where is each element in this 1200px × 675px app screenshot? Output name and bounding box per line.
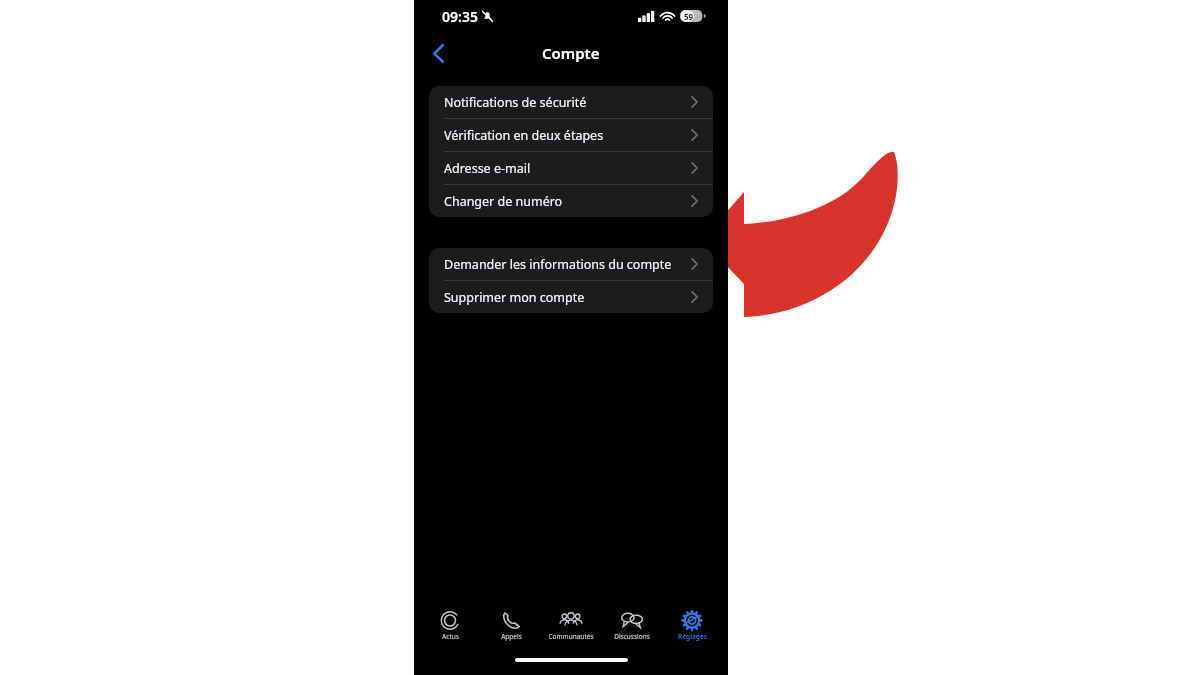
staticText: Adresse e-mail: [444, 160, 691, 177]
staticText: Notifications de sécurité: [444, 94, 691, 111]
button[interactable]: Discussions: [602, 607, 662, 641]
button[interactable]: Adresse e-mail: [429, 152, 713, 184]
staticText: Compte: [542, 43, 600, 63]
staticText: Actus: [442, 632, 459, 641]
button[interactable]: Retour: [420, 35, 456, 71]
staticText: Appels: [501, 632, 522, 641]
button[interactable]: Demander les informations du compte: [429, 248, 713, 280]
button[interactable]: Notifications de sécurité: [429, 86, 713, 118]
button[interactable]: Supprimer mon compte: [429, 281, 713, 313]
button[interactable]: Appels: [481, 607, 541, 641]
button[interactable]: Vérification en deux étapes: [429, 119, 713, 151]
button[interactable]: Changer de numéro: [429, 185, 713, 217]
staticText: Changer de numéro: [444, 193, 691, 210]
button[interactable]: Actus: [420, 607, 480, 641]
button[interactable]: Réglages: [662, 607, 722, 641]
staticText: Discussions: [614, 632, 650, 641]
staticText: Communautés: [548, 632, 594, 641]
staticText: 59: [684, 11, 694, 22]
staticText: Vérification en deux étapes: [444, 127, 691, 144]
staticText: Supprimer mon compte: [444, 289, 691, 306]
staticText: Demander les informations du compte: [444, 256, 691, 273]
staticText: 09:35: [442, 7, 478, 26]
staticText: Réglages: [678, 632, 707, 641]
button[interactable]: Communautés: [541, 607, 601, 641]
